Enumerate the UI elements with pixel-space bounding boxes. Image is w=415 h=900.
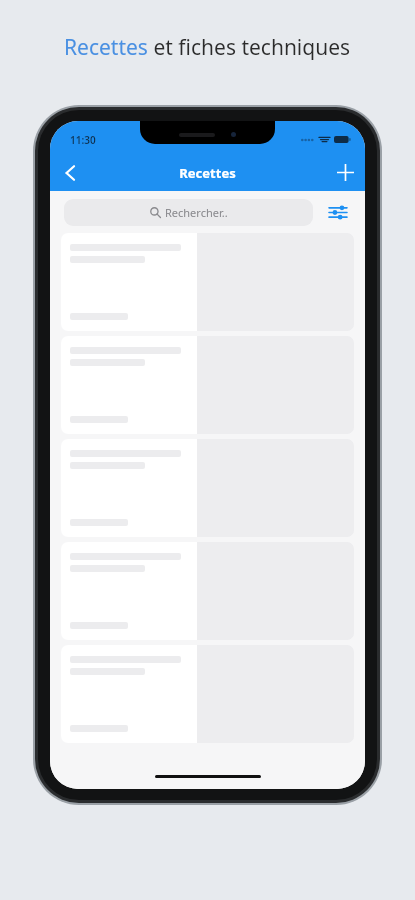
button[interactable]: Filter [325, 199, 351, 225]
button[interactable] [61, 233, 354, 331]
button[interactable] [61, 542, 354, 640]
staticText: Recettes [64, 33, 148, 62]
button[interactable] [61, 336, 354, 434]
staticText: Recettes [179, 164, 236, 182]
staticText: et fiches techniques [148, 33, 351, 62]
staticText: 11:30 [70, 133, 96, 147]
button[interactable] [61, 439, 354, 537]
button[interactable]: Back [50, 154, 90, 191]
button[interactable] [61, 645, 354, 743]
button[interactable]: Rechercher.. [64, 199, 313, 226]
staticText: Rechercher.. [165, 205, 228, 220]
button[interactable]: Add [325, 154, 365, 191]
